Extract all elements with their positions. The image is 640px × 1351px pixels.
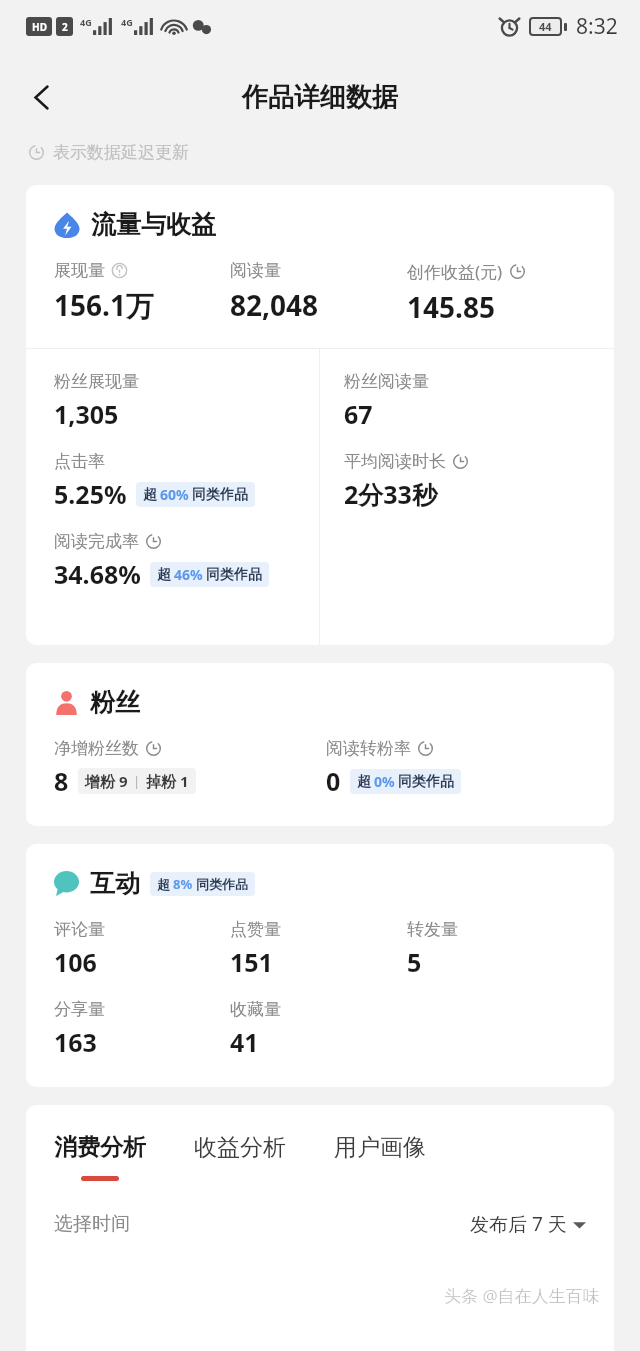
staticText: 增粉 9 [85,771,128,791]
staticText: 1,305 [54,397,119,431]
staticText: 点击率 [54,451,105,472]
button[interactable]: Back [18,73,66,121]
staticText: 超 [143,486,157,504]
staticText: 5 [407,945,422,979]
staticText: 8 [54,764,69,798]
staticText: 发布后 7 天 [470,1211,567,1237]
staticText: 超 [157,566,171,584]
staticText: 净增粉丝数 [54,738,139,759]
staticText: 转发量 [407,919,458,940]
staticText: 流量与收益 [91,209,216,240]
staticText: 60% [160,485,189,504]
staticText: 作品详细数据 [242,81,398,114]
staticText: 4G [121,16,133,28]
staticText: 82,048 [230,286,319,324]
staticText: 8% [173,875,193,893]
staticText: 平均阅读时长 [344,451,446,472]
staticText: 点赞量 [230,919,281,940]
staticText: 阅读完成率 [54,531,139,552]
staticText: 创作收益(元) [407,260,503,283]
staticText: 151 [230,945,273,979]
staticText: 67 [344,397,373,431]
staticText: 阅读量 [230,260,281,281]
staticText: | [133,772,141,790]
staticText: 用户画像 [334,1133,426,1162]
staticText: 粉丝展现量 [54,371,139,392]
staticText: 同类作品 [206,566,262,584]
staticText: 5.25% [54,477,127,511]
staticText: 同类作品 [196,876,248,892]
button[interactable]: 消费分析 [54,1133,146,1181]
staticText: 145.85 [407,288,495,326]
staticText: 掉粉 1 [146,771,189,791]
staticText: 2 [62,20,68,34]
staticText: 106 [54,945,97,979]
staticText: 44 [539,19,552,34]
button[interactable]: 发布后 7 天 [470,1211,586,1237]
staticText: 46% [174,565,203,584]
staticText: 156.1万 [54,286,154,324]
staticText: 阅读转粉率 [326,738,411,759]
staticText: 同类作品 [398,773,454,791]
staticText: HD [32,20,47,34]
staticText: 收益分析 [194,1133,286,1162]
staticText: 评论量 [54,919,105,940]
staticText: 同类作品 [192,486,248,504]
staticText: 163 [54,1025,97,1059]
staticText: 粉丝 [90,687,140,718]
staticText: 头条 @自在人生百味 [444,1284,600,1307]
staticText: 消费分析 [54,1133,146,1162]
staticText: 0% [374,772,395,791]
staticText: 4G [80,16,92,28]
staticText: 选择时间 [54,1212,130,1236]
staticText: 粉丝阅读量 [344,371,429,392]
staticText: 超 [357,773,371,791]
staticText: 收藏量 [230,999,281,1020]
staticText: 分享量 [54,999,105,1020]
staticText: 8:32 [576,12,618,41]
staticText: 互动 [90,868,140,899]
staticText: 展现量 [54,260,105,281]
staticText: 表示数据延迟更新 [53,142,189,163]
button[interactable]: 用户画像 [334,1133,426,1181]
staticText: 0 [326,764,341,798]
staticText: 超 [157,876,170,892]
staticText: 34.68% [54,557,141,591]
staticText: 41 [230,1025,259,1059]
staticText: 2分33秒 [344,477,437,511]
button[interactable]: 收益分析 [194,1133,286,1181]
